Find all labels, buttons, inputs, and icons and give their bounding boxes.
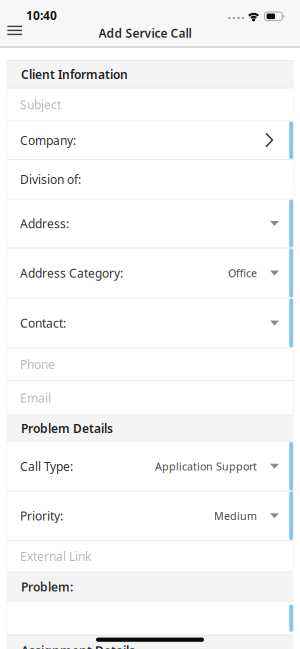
button[interactable]: Menu <box>3 18 27 42</box>
staticText: Phone <box>20 356 55 372</box>
staticText: Assignment Details <box>21 642 135 649</box>
button[interactable]: Subject <box>7 88 293 121</box>
staticText: Priority: <box>20 508 63 524</box>
staticText: Call Type: <box>20 458 73 474</box>
button[interactable]: Problem <box>7 601 293 635</box>
button[interactable]: Contact: <box>7 298 293 348</box>
button[interactable]: Division of: <box>7 159 293 199</box>
staticText: Client Information <box>21 66 128 82</box>
staticText: Contact: <box>20 315 66 331</box>
staticText: Office <box>228 266 257 280</box>
button[interactable]: Company: <box>7 121 293 159</box>
staticText: Email <box>20 390 51 406</box>
button[interactable]: Email <box>7 380 293 415</box>
staticText: Address Category: <box>20 265 123 281</box>
button[interactable]: Call Type: <box>7 441 293 491</box>
staticText: Add Service Call <box>98 25 191 41</box>
button[interactable]: External Link <box>7 540 293 572</box>
button[interactable]: Address: <box>7 199 293 248</box>
staticText: Subject <box>20 96 61 112</box>
staticText: Division of: <box>20 171 81 187</box>
button[interactable]: Priority: <box>7 491 293 540</box>
staticText: Company: <box>20 132 76 148</box>
staticText: 10:40 <box>26 7 57 23</box>
button[interactable]: Phone <box>7 348 293 380</box>
staticText: External Link <box>20 548 91 564</box>
staticText: Application Support <box>155 459 257 473</box>
staticText: Address: <box>20 215 69 231</box>
staticText: Medium <box>214 509 257 523</box>
button[interactable]: Address Category: <box>7 248 293 298</box>
staticText: Problem: <box>21 579 73 595</box>
staticText: Problem Details <box>21 420 113 436</box>
